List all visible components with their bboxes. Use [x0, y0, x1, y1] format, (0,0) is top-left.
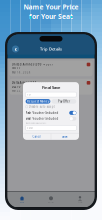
button[interactable]: Request Money: [26, 99, 50, 104]
staticText: Home: [20, 201, 24, 203]
staticText: Name Your Price: [23, 2, 78, 11]
staticText: 100: [27, 126, 33, 130]
button[interactable]: Cancel: [23, 133, 51, 140]
staticText: Disable auto accept: [29, 105, 55, 109]
button[interactable]: Save: [51, 133, 79, 140]
staticText: 10: [27, 93, 31, 96]
staticText: Final Save: [42, 85, 60, 90]
staticText: Request Money: [27, 100, 49, 103]
staticText: Flash Voucher Included: [26, 111, 59, 115]
button[interactable]: Delta Airways (244 → 812): [9, 79, 92, 95]
staticText: Delta Airways (244 → 812): [12, 81, 48, 84]
staticText: DL210: [12, 85, 21, 88]
button[interactable]: My Trips: [36, 192, 65, 207]
staticText: Profile: [77, 201, 82, 203]
staticText: Other transferable vouchers: [26, 122, 47, 124]
button[interactable]: Back: [10, 44, 20, 54]
staticText: United Airlines (390 → 907): [12, 63, 53, 66]
staticText: Pay Offer: [58, 100, 70, 103]
staticText: for Your Seat: [29, 12, 73, 21]
button[interactable]: United Airlines (390 → 907): [9, 60, 92, 76]
button[interactable]: Email Voucher Included: [23, 116, 79, 122]
button[interactable]: Flash Voucher Included: [23, 110, 79, 116]
button[interactable]: Pay Offer: [52, 99, 76, 104]
button[interactable]: Home: [7, 192, 36, 207]
staticText: LH777: [12, 67, 21, 70]
staticText: Email Voucher Included: [26, 117, 59, 120]
staticText: Cancel: [32, 135, 41, 138]
staticText: My Trips: [48, 201, 54, 203]
staticText: Mar 14, 2024: [12, 71, 31, 74]
staticText: Mar 22, 2024: [12, 89, 31, 92]
button[interactable]: Profile: [65, 192, 94, 207]
staticText: Trip Details: [40, 46, 62, 52]
staticText: Save: [62, 135, 68, 138]
staticText: ‹: [14, 45, 16, 53]
